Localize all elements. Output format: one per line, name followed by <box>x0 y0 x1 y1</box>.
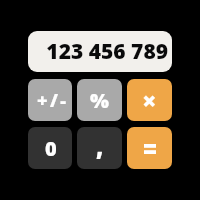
staticText: × <box>142 83 157 117</box>
button[interactable]: Decimal separator <box>77 127 122 169</box>
button[interactable]: 0 <box>28 127 72 169</box>
button[interactable]: Toggle sign <box>28 79 72 121</box>
button[interactable]: 123 456 789 <box>28 31 172 72</box>
staticText: 0 <box>45 135 57 162</box>
staticText: % <box>90 87 109 114</box>
staticText: +/- <box>37 88 69 113</box>
staticText: , <box>96 130 104 163</box>
button[interactable]: Equals <box>127 127 172 169</box>
button[interactable]: % <box>77 79 122 121</box>
button[interactable]: Multiply <box>127 79 172 121</box>
staticText: 123 456 789 <box>46 37 168 66</box>
